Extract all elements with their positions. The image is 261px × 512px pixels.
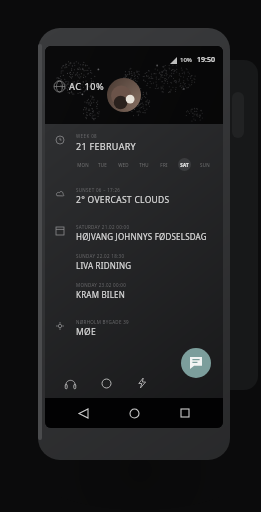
button[interactable]: Messages [181,348,211,378]
button[interactable]: SUN [198,158,211,171]
staticText: 19:50 [197,55,215,65]
staticText: 21 FEBRUARY [76,140,136,152]
button[interactable]: WEEK 08 [45,130,223,174]
staticText: WEEK 08 [76,133,98,139]
button[interactable]: SATURDAY 21.02 00:00 [45,221,223,303]
staticText: 2° OVERCAST CLOUDS [76,194,170,206]
button[interactable]: SUNSET 06 – 17:26 [45,184,223,209]
button[interactable]: Assistant [95,372,117,394]
staticText: NØRHOLM BYGADE 39 [76,319,129,325]
button[interactable]: Home [121,400,147,426]
button[interactable]: MON [76,158,89,171]
staticText: SUNSET 06 – 17:26 [76,187,121,193]
staticText: THU [139,162,149,168]
staticText: SATURDAY 21.02 00:00 [76,224,130,230]
button[interactable]: Back [70,400,96,426]
staticText: SUNDAY 22.02 18:30 [76,253,125,259]
staticText: AC 10% [69,80,105,92]
button[interactable]: THU [137,158,150,171]
button[interactable]: NØRHOLM BYGADE 39 [45,316,223,341]
button[interactable]: AC 10% [52,78,107,94]
staticText: KRAM BILEN [76,289,126,300]
staticText: TUE [98,162,107,168]
staticText: HØJVANG JOHNNYS FØDSELSDAG [76,231,207,242]
staticText: LIVA RIDNING [76,260,132,271]
button[interactable]: FRI [157,158,170,171]
staticText: FRI [160,162,168,168]
staticText: SAT [180,162,189,168]
button[interactable]: Profile [107,78,141,112]
button[interactable]: Flash [131,372,153,394]
staticText: MØE [76,326,96,338]
staticText: SUN [200,162,210,168]
staticText: 10% [180,56,192,64]
button[interactable]: SAT [178,158,191,171]
button[interactable]: Music [59,372,81,394]
button[interactable]: TUE [96,158,109,171]
button[interactable]: WED [117,158,130,171]
staticText: WED [118,162,129,168]
staticText: MON [77,162,89,168]
button[interactable]: Recents [172,400,198,426]
staticText: MONDAY 23.02 00:00 [76,282,127,288]
